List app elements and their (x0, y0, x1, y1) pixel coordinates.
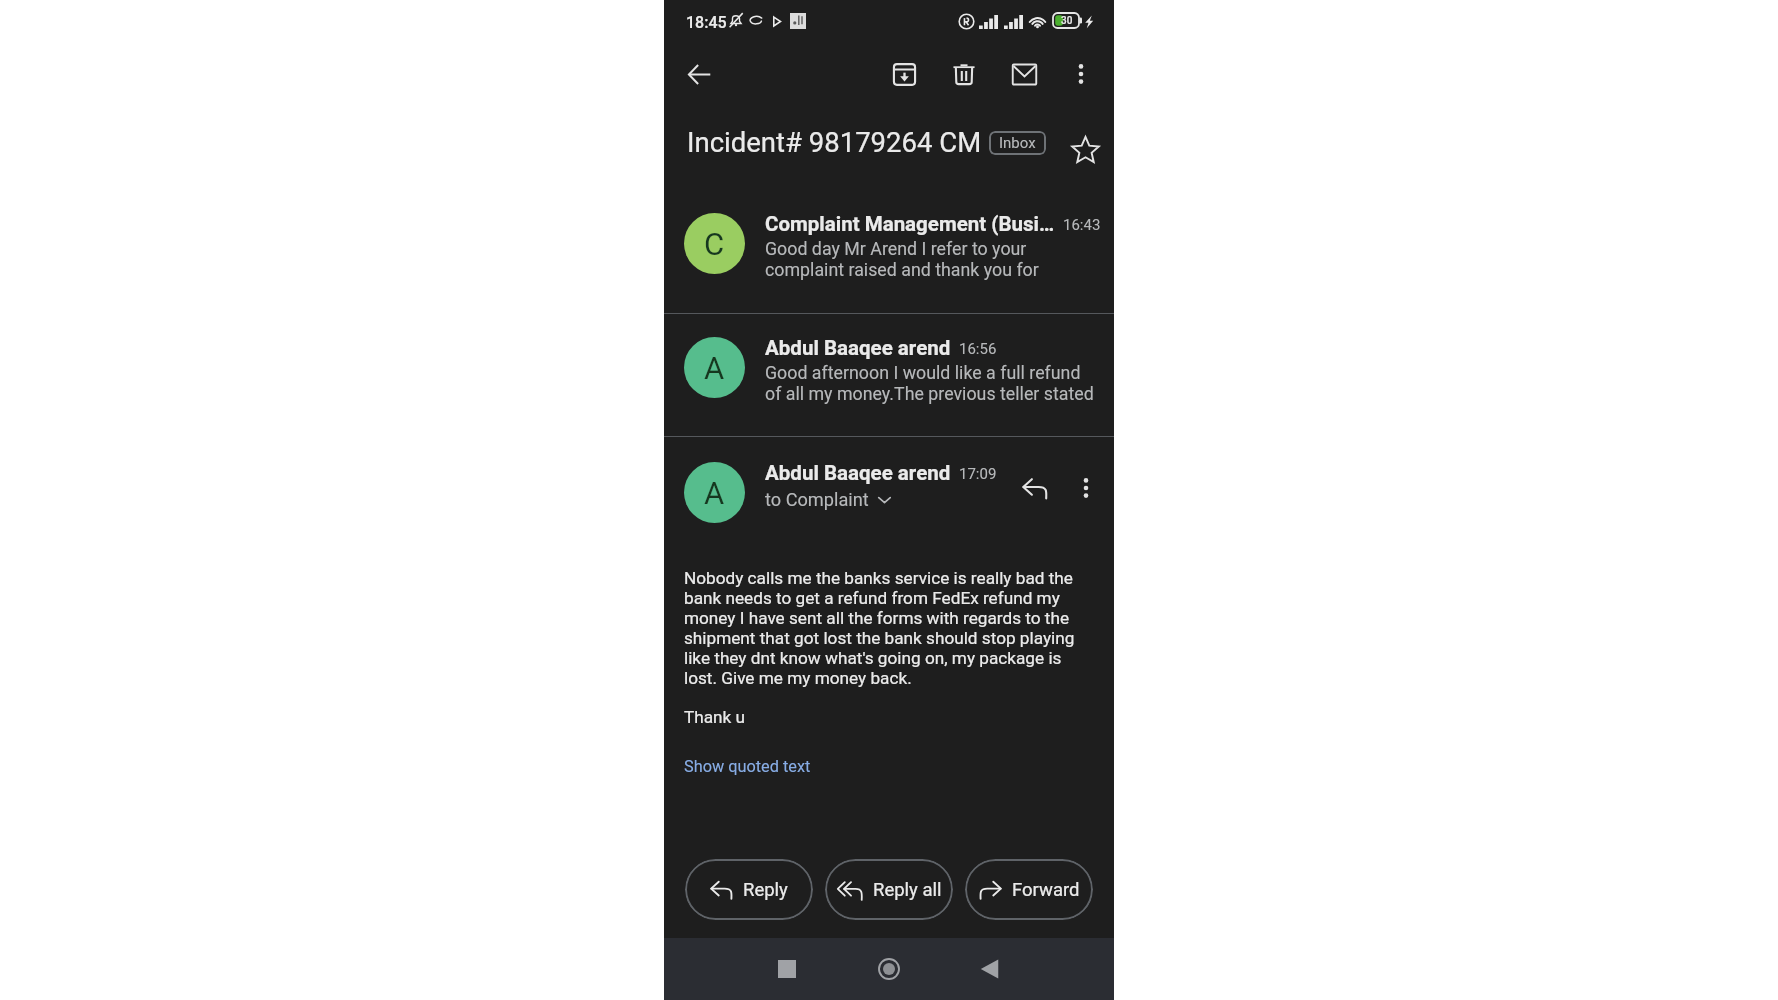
staticText: lost. Give me my money back. (684, 668, 912, 688)
button[interactable]: Forward (965, 859, 1093, 920)
staticText: Show quoted text (684, 757, 811, 776)
staticText: bank needs to get a refund from FedEx re… (684, 588, 1060, 608)
staticText: 16:43 (1063, 216, 1101, 234)
button[interactable]: Delete (941, 51, 987, 97)
staticText: Reply all (873, 879, 942, 901)
button[interactable]: More options (1060, 53, 1102, 95)
button[interactable]: Inbox (989, 131, 1046, 155)
button[interactable]: Star (1062, 127, 1108, 173)
staticText: 17:09 (959, 465, 997, 483)
button[interactable]: Show quoted text (684, 757, 811, 776)
staticText: Good afternoon I would like a full refun… (765, 362, 1081, 383)
staticText: like they dnt know what's going on, my p… (684, 648, 1062, 668)
staticText: Reply (743, 879, 788, 901)
staticText: 16:56 (959, 340, 997, 358)
staticText: Forward (1012, 879, 1080, 901)
button[interactable]: Reply (1012, 465, 1058, 511)
staticText: Good day Mr Arend I refer to your (765, 238, 1027, 259)
button[interactable]: Back (965, 945, 1013, 993)
staticText: Incident# 98179264 CM (687, 126, 982, 158)
staticText: Abdul Baaqee arend (765, 461, 951, 485)
staticText: shipment that got lost the bank should s… (684, 628, 1075, 648)
staticText: 18:45 (686, 13, 727, 32)
staticText: A (704, 475, 725, 511)
staticText: Thank u (684, 707, 746, 727)
staticText: C (704, 226, 725, 262)
button[interactable]: Archive (881, 51, 927, 97)
button[interactable]: Reply all (825, 859, 953, 920)
staticText: money I have sent all the forms with reg… (684, 608, 1070, 628)
button[interactable]: C (664, 197, 1114, 289)
button[interactable]: Back (676, 51, 722, 97)
button[interactable]: Home (865, 945, 913, 993)
staticText: Abdul Baaqee arend (765, 336, 951, 360)
staticText: Nobody calls me the banks service is rea… (684, 568, 1073, 588)
staticText: of all my money.The previous teller stat… (765, 383, 1094, 404)
button[interactable]: Mark as unread (1001, 51, 1047, 97)
button[interactable]: Recent apps (763, 945, 811, 993)
staticText: 30 (1061, 15, 1073, 27)
button[interactable]: A (664, 321, 1114, 413)
staticText: Complaint Management (Busi… (765, 212, 1055, 236)
button[interactable]: to Complaint (765, 489, 891, 510)
button[interactable]: Reply (685, 859, 813, 920)
staticText: A (704, 350, 725, 386)
staticText: to Complaint (765, 489, 869, 510)
staticText: Inbox (999, 134, 1036, 152)
staticText: complaint raised and thank you for (765, 259, 1039, 280)
button[interactable]: More options (1065, 467, 1107, 509)
